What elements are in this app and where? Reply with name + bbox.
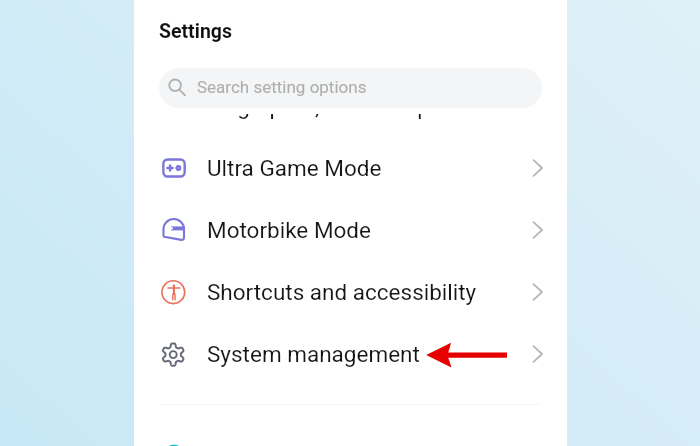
other: Annotation arrow pointing to System mana…: [420, 336, 512, 374]
staticText: Shortcuts and accessibility: [207, 279, 477, 305]
button[interactable]: System management: [134, 330, 567, 378]
staticText: Settings: [159, 20, 232, 43]
staticText: Motorbike Mode: [207, 217, 371, 243]
staticText: System management: [207, 341, 420, 367]
button[interactable]: Motorbike Mode: [134, 206, 567, 254]
button[interactable]: Fingerprint, face and password: [134, 72, 567, 120]
button[interactable]: Search setting options: [159, 68, 542, 108]
button[interactable]: Shortcuts and accessibility: [134, 268, 567, 316]
staticText: Search setting options: [197, 77, 367, 97]
staticText: Fingerprint, face and password: [207, 93, 516, 119]
staticText: Ultra Game Mode: [207, 155, 382, 181]
button[interactable]: Ultra Game Mode: [134, 144, 567, 192]
